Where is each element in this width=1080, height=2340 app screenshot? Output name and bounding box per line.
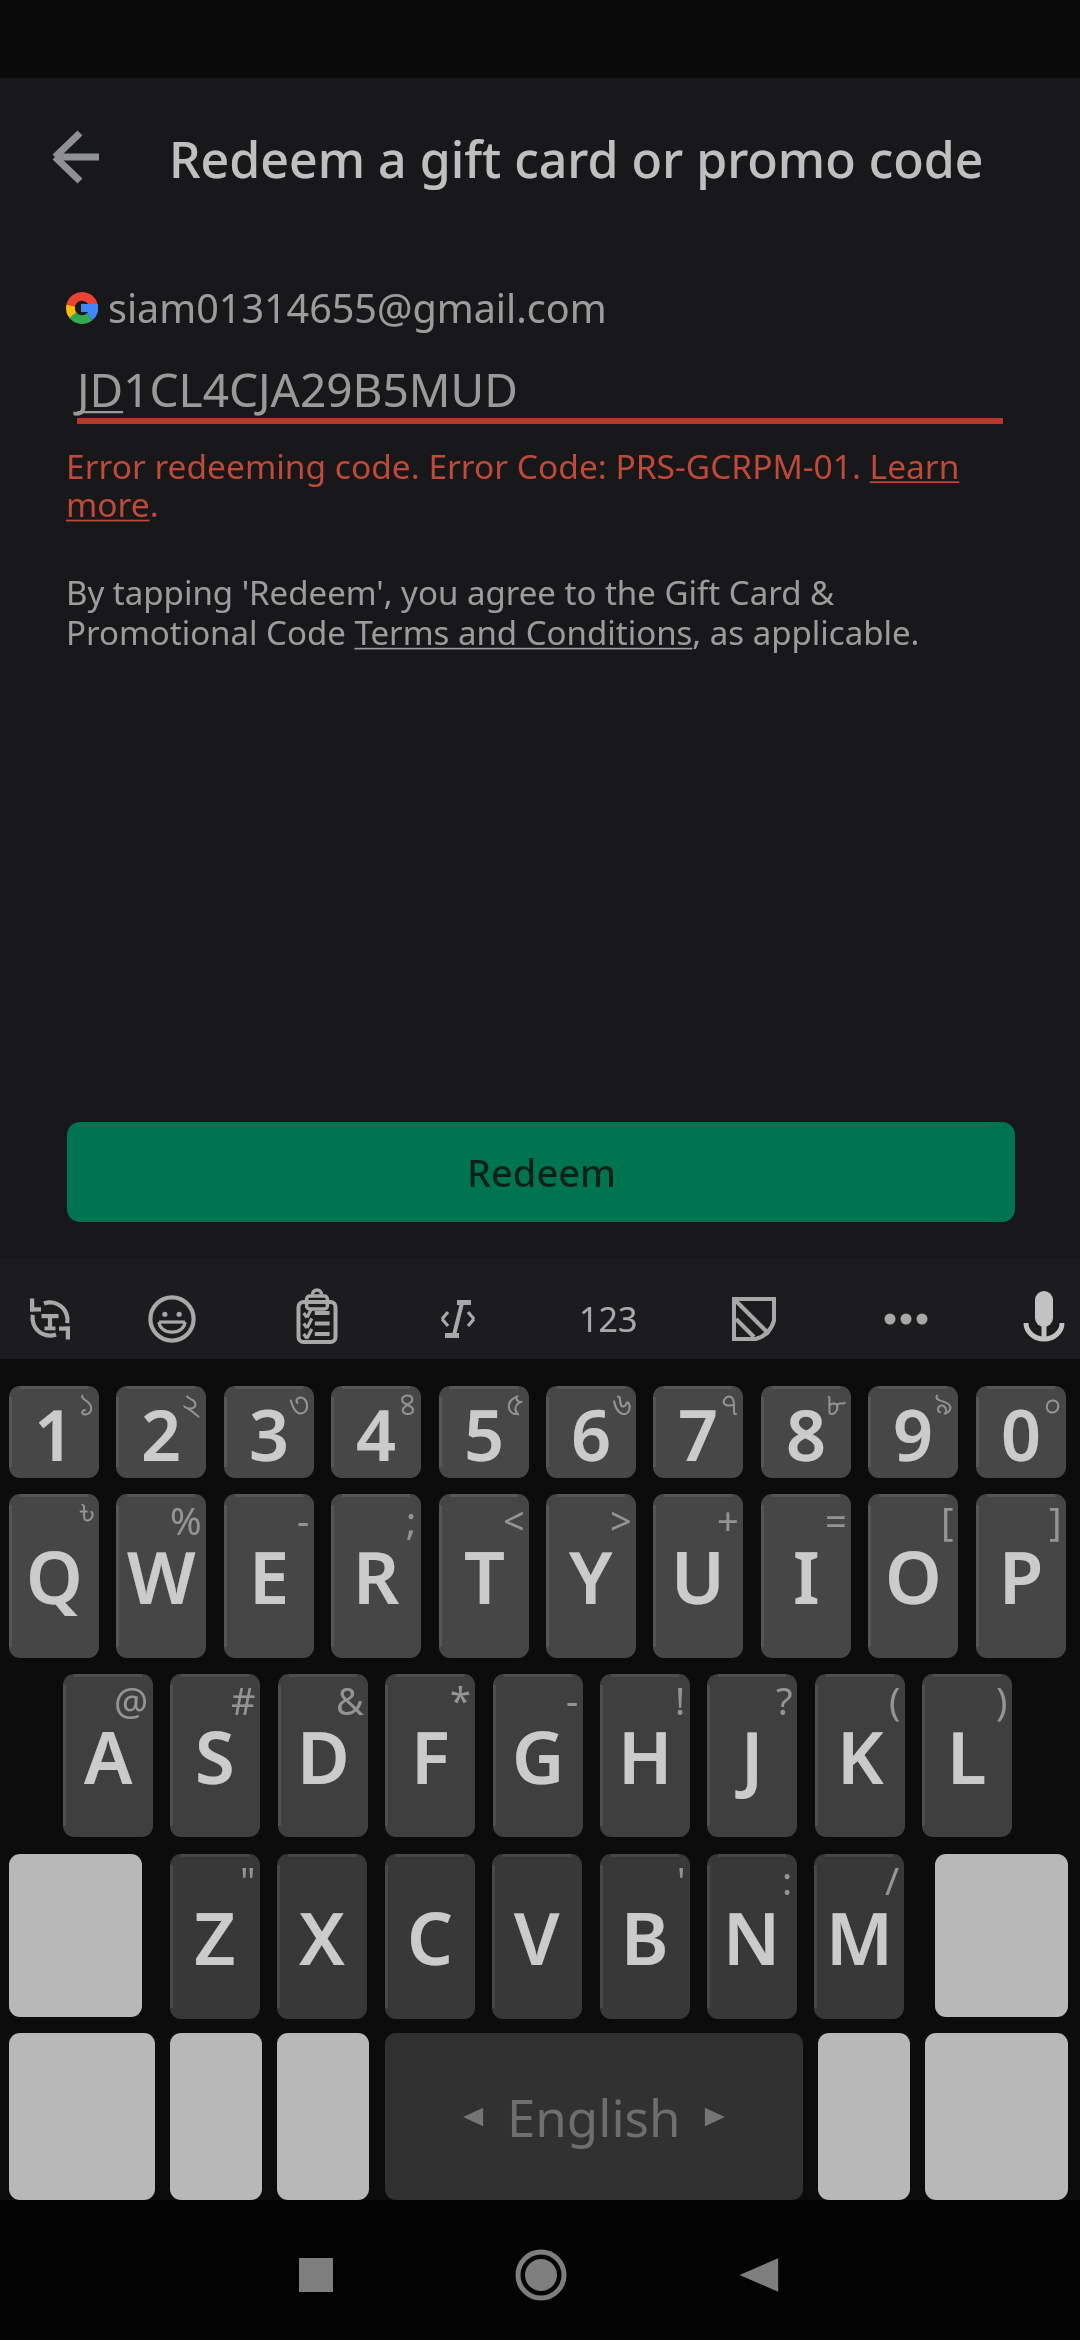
staticText: 0 (1001, 1386, 1042, 1478)
button[interactable]: ৩ (224, 1386, 314, 1478)
staticText: " (240, 1854, 256, 1906)
staticText: ( (889, 1674, 901, 1726)
staticText: 6 (571, 1386, 612, 1478)
button[interactable]: ( (815, 1674, 905, 1837)
staticText: # (231, 1674, 256, 1726)
button[interactable]: Learn more (66, 488, 151, 526)
button[interactable]: Redeem (67, 1122, 1015, 1222)
staticText: Redeem (467, 1146, 616, 1198)
staticText: ৯ (934, 1386, 954, 1424)
button[interactable]: Emoji (170, 2033, 262, 2200)
button[interactable]: Comma (277, 2033, 369, 2200)
button[interactable]: Translate (5, 1274, 95, 1364)
button[interactable]: % (116, 1494, 206, 1658)
button[interactable]: Emoji (127, 1274, 217, 1364)
staticText: O (885, 1527, 942, 1625)
button[interactable]: ' (600, 1854, 690, 2019)
staticText: I (793, 1527, 820, 1625)
button[interactable]: + (653, 1494, 743, 1658)
staticText: JD1CL4CJA29B5MUD (77, 358, 518, 421)
button[interactable]: : (707, 1854, 797, 2019)
button[interactable]: Stickers (709, 1274, 799, 1364)
button[interactable]: # (170, 1674, 260, 1837)
button[interactable]: Home (501, 2235, 581, 2315)
button[interactable]: = (761, 1494, 851, 1658)
button[interactable]: ! (600, 1674, 690, 1837)
staticText: = (825, 1494, 847, 1546)
button[interactable]: Voice input (999, 1274, 1080, 1364)
button[interactable]: > (546, 1494, 636, 1658)
button[interactable]: Symbols (9, 2033, 155, 2200)
staticText: T (464, 1527, 505, 1625)
button[interactable]: ৯ (868, 1386, 958, 1478)
button[interactable]: - (493, 1674, 583, 1837)
button[interactable]: Period (818, 2033, 910, 2200)
staticText: 4 (356, 1386, 397, 1478)
button[interactable]: V (492, 1854, 582, 2019)
staticText: @ (114, 1674, 149, 1726)
staticText: Error redeeming code. Error Code: PRS-GC… (66, 443, 999, 527)
staticText: R (353, 1527, 400, 1625)
button[interactable]: ৬ (546, 1386, 636, 1478)
button[interactable]: ৫ (439, 1386, 529, 1478)
staticText: ? (776, 1674, 793, 1726)
staticText: siam01314655@gmail.com (108, 281, 607, 335)
staticText: ৪ (399, 1386, 417, 1424)
button[interactable]: ; (331, 1494, 421, 1658)
staticText: 3 (249, 1386, 290, 1478)
staticText: W (127, 1527, 196, 1625)
staticText: N (723, 1888, 781, 1986)
staticText: : (782, 1854, 793, 1906)
button[interactable]: < (439, 1494, 529, 1658)
button[interactable]: More options (861, 1274, 951, 1364)
staticText: ৫ (506, 1386, 525, 1424)
staticText: * (450, 1674, 471, 1726)
staticText: S (195, 1707, 235, 1805)
button[interactable]: Numbers (563, 1274, 653, 1364)
button[interactable]: ৮ (761, 1386, 851, 1478)
button[interactable]: Back (13, 93, 141, 221)
button[interactable]: ? (707, 1674, 797, 1837)
staticText: < (503, 1494, 525, 1546)
button[interactable]: X (277, 1854, 367, 2019)
staticText: ৳ (80, 1494, 95, 1532)
button[interactable]: Clipboard (272, 1274, 362, 1364)
button[interactable]: Shift (9, 1854, 142, 2017)
button[interactable]: " (170, 1854, 260, 2019)
staticText: C (407, 1888, 453, 1986)
button[interactable]: Terms and Conditions (355, 612, 697, 652)
button[interactable]: [ (868, 1494, 958, 1658)
button[interactable]: Back (718, 2235, 798, 2315)
button[interactable]: ৳ (9, 1494, 99, 1658)
button[interactable]: ১ (9, 1386, 99, 1478)
staticText: X (299, 1888, 345, 1986)
button[interactable]: ২ (116, 1386, 206, 1478)
button[interactable]: ৭ (653, 1386, 743, 1478)
staticText: 1 (34, 1386, 75, 1478)
button[interactable]: * (385, 1674, 475, 1837)
button[interactable]: @ (63, 1674, 153, 1837)
button[interactable]: Text editing (413, 1274, 503, 1364)
staticText: ) (996, 1674, 1008, 1726)
staticText: G (512, 1707, 565, 1805)
button[interactable]: English (385, 2033, 803, 2200)
staticText: J (741, 1707, 764, 1805)
staticText: B (621, 1888, 669, 1986)
button[interactable]: / (814, 1854, 904, 2019)
button[interactable]: ০ (976, 1386, 1066, 1478)
staticText: ৮ (826, 1386, 847, 1424)
staticText: D (297, 1707, 350, 1805)
button[interactable]: - (224, 1494, 314, 1658)
button[interactable]: C (385, 1854, 475, 2019)
button[interactable]: Backspace (935, 1854, 1068, 2017)
staticText: A (84, 1707, 133, 1805)
staticText: ২ (182, 1386, 202, 1424)
button[interactable]: Learn more (871, 450, 973, 492)
button[interactable]: & (278, 1674, 368, 1837)
button[interactable]: ] (976, 1494, 1066, 1658)
button[interactable]: Enter (925, 2033, 1068, 2200)
button[interactable]: ৪ (331, 1386, 421, 1478)
staticText: 7 (678, 1386, 719, 1478)
button[interactable]: Recent apps (276, 2235, 356, 2315)
button[interactable]: ) (922, 1674, 1012, 1837)
